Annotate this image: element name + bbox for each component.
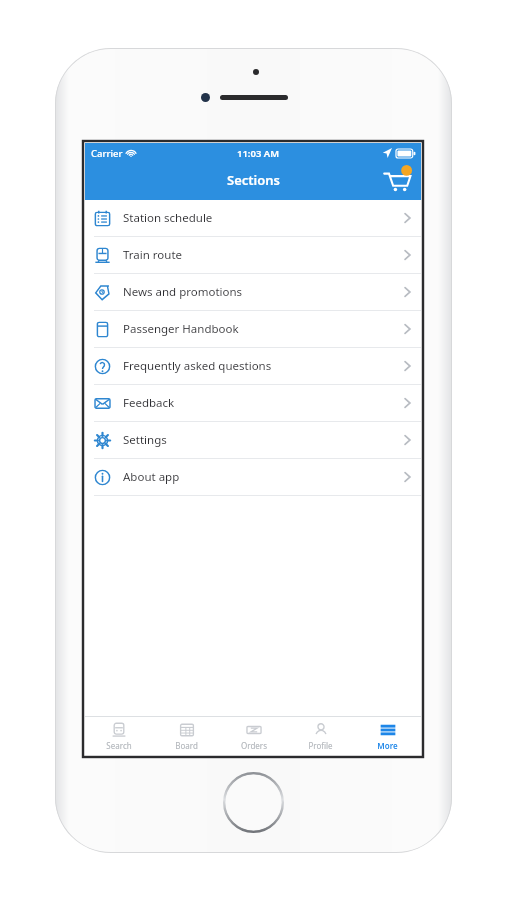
button[interactable]: Station schedule [85,200,421,237]
staticText: Board [175,740,198,751]
staticText: Passenger Handbook [123,321,239,337]
button[interactable]: Orders [220,717,287,755]
staticText: Feedback [123,395,175,411]
button[interactable]: Cart [381,164,413,196]
button[interactable]: Frequently asked questions [85,348,421,385]
staticText: Search [106,740,132,751]
button[interactable]: Board [153,717,220,755]
button[interactable]: Settings [85,422,421,459]
staticText: Sections [227,171,280,189]
staticText: Carrier [91,147,123,160]
staticText: Settings [123,432,167,448]
staticText: More [377,740,398,751]
button[interactable]: Feedback [85,385,421,422]
button[interactable]: News and promotions [85,274,421,311]
button[interactable]: Passenger Handbook [85,311,421,348]
staticText: Frequently asked questions [123,358,272,374]
staticText: Train route [123,247,183,263]
button[interactable]: Train route [85,237,421,274]
staticText: News and promotions [123,284,243,300]
staticText: 11:03 AM [237,147,280,160]
button[interactable]: Search [85,717,153,755]
button[interactable]: About app [85,459,421,496]
button[interactable]: More [354,717,421,755]
staticText: Station schedule [123,210,213,226]
staticText: Orders [241,740,267,751]
button[interactable]: Profile [287,717,354,755]
staticText: Profile [308,740,333,751]
staticText: About app [123,469,180,485]
